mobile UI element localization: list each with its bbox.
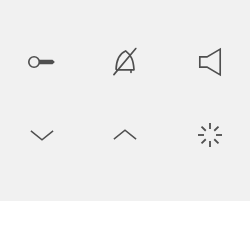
button[interactable]: Mute notifications <box>97 34 153 90</box>
button[interactable]: Up <box>97 107 153 163</box>
button[interactable]: Brightness <box>182 107 238 163</box>
button[interactable]: Volume <box>182 34 238 90</box>
button[interactable]: Lock <box>14 34 70 90</box>
button[interactable]: Down <box>14 107 70 163</box>
